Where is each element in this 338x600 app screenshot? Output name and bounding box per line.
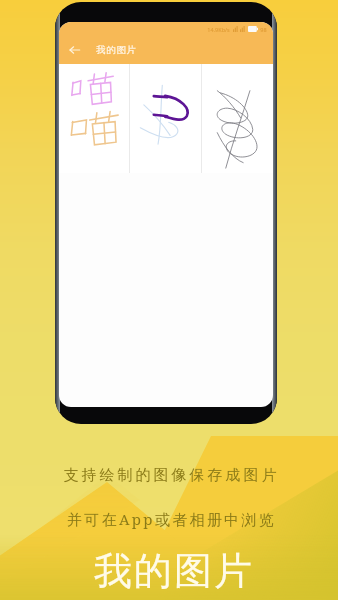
button[interactable]: Drawing 2: [130, 64, 201, 173]
staticText: 我的图片: [96, 44, 137, 56]
staticText: 支持绘制的图像保存成图片: [62, 466, 278, 485]
button[interactable]: Back: [59, 36, 89, 64]
button[interactable]: Drawing 3: [202, 64, 273, 173]
button[interactable]: Drawing 1: [59, 64, 129, 173]
staticText: 我的图片: [93, 547, 253, 595]
staticText: 14.9Kb/s: [207, 26, 230, 33]
staticText: 98: [260, 26, 267, 33]
staticText: 并可在App或者相册中浏览: [67, 509, 276, 529]
